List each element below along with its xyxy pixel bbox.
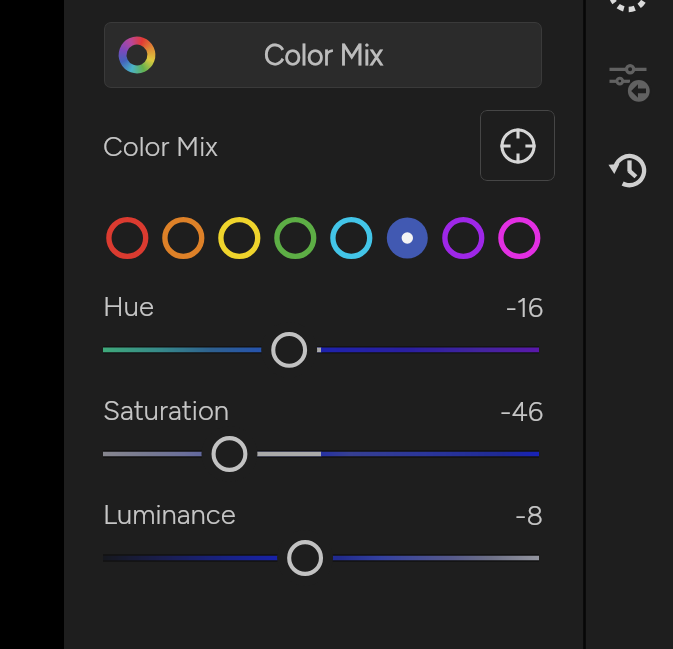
button[interactable]: Channel 5 — [323, 216, 379, 260]
button[interactable]: Channel 1 — [99, 216, 155, 260]
staticText: Luminance — [103, 498, 236, 531]
button[interactable]: Target adjust — [480, 110, 555, 181]
staticText: Hue — [103, 290, 154, 323]
button[interactable]: Hue slider — [0, 0, 673, 649]
staticText: Color Mix — [264, 38, 383, 72]
staticText: -8 — [442, 499, 543, 533]
button[interactable]: Channel 6 — [379, 216, 435, 260]
button[interactable]: Channel 8 — [491, 216, 547, 260]
button[interactable]: Channel 7 — [435, 216, 491, 260]
button[interactable]: Channel 3 — [211, 216, 267, 260]
staticText: -46 — [442, 395, 543, 429]
button[interactable]: Luminance slider — [0, 0, 673, 649]
button[interactable]: Channel 4 — [267, 216, 323, 260]
button[interactable]: Color Mix — [104, 22, 542, 88]
button[interactable]: Saturation slider — [0, 0, 673, 649]
button[interactable]: Channel 2 — [155, 216, 211, 260]
button[interactable]: Masking — [606, 0, 652, 14]
staticText: Color Mix — [103, 130, 218, 163]
staticText: -16 — [442, 291, 543, 325]
staticText: Saturation — [103, 394, 230, 427]
button[interactable]: Previous edits — [606, 60, 652, 102]
button[interactable]: History — [611, 153, 649, 191]
